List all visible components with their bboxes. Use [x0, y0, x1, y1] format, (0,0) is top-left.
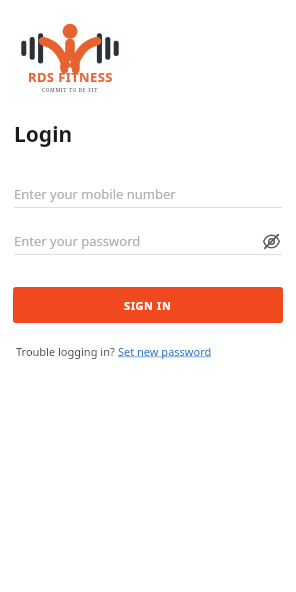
staticText: COMMIT TO BE FIT: [42, 87, 99, 94]
staticText: Trouble logging in?: [16, 344, 118, 359]
staticText: Login: [14, 120, 73, 149]
button[interactable]: Enter your mobile number: [14, 181, 282, 207]
staticText: RDS FITNESS: [28, 68, 113, 86]
button[interactable]: Enter your password: [14, 228, 282, 254]
button[interactable]: Show password: [260, 230, 282, 252]
staticText: SIGN IN: [124, 298, 172, 313]
button[interactable]: Set new password: [118, 344, 212, 359]
staticText: Set new password: [118, 344, 212, 359]
staticText: Enter your password: [14, 232, 141, 250]
staticText: Enter your mobile number: [14, 185, 176, 203]
button[interactable]: SIGN IN: [13, 287, 283, 323]
